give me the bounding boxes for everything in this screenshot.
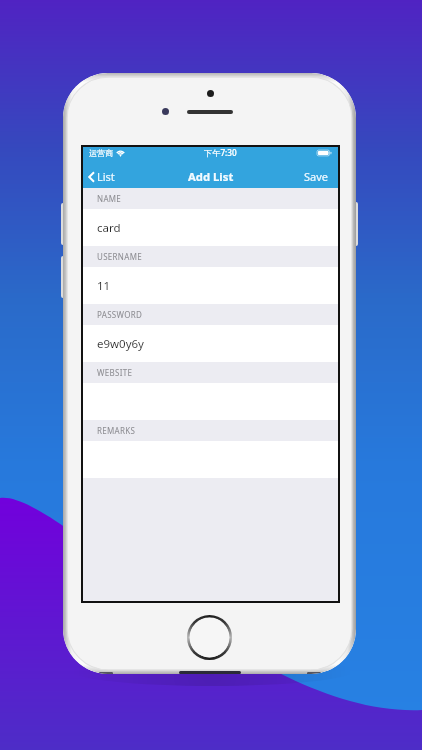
button[interactable]: e9w0y6y — [97, 325, 338, 362]
staticText: 下午7:30 — [204, 147, 237, 158]
button[interactable]: card — [97, 209, 338, 246]
staticText: List — [97, 169, 115, 184]
staticText: card — [97, 220, 121, 236]
staticText: PASSWORD — [97, 309, 143, 320]
staticText: NAME — [97, 193, 122, 204]
staticText: e9w0y6y — [97, 336, 144, 352]
staticText: REMARKS — [97, 425, 136, 436]
staticText: Add List — [188, 169, 234, 184]
button[interactable]: Save — [295, 169, 338, 184]
staticText: 运营商 — [89, 148, 113, 158]
button[interactable]: List — [83, 169, 121, 184]
staticText: USERNAME — [97, 251, 142, 262]
staticText: WEBSITE — [97, 367, 133, 378]
staticText: Save — [304, 169, 329, 184]
button[interactable]: 11 — [97, 267, 338, 304]
staticText: 11 — [97, 278, 111, 294]
